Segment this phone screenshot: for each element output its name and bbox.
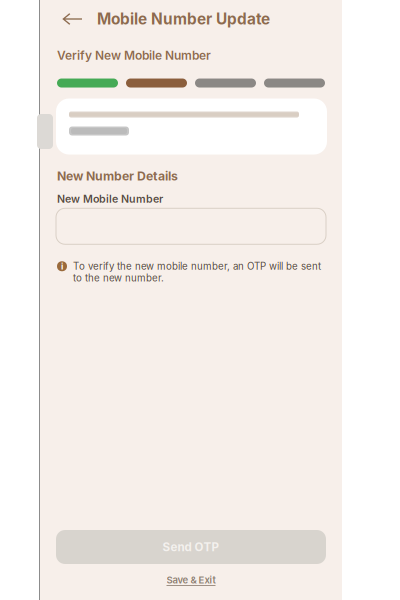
button[interactable]: Back — Mobile Number Update <box>40 0 342 38</box>
button[interactable]: New Mobile Number field <box>56 208 326 244</box>
staticText: New Number Details <box>57 168 178 183</box>
staticText: New Mobile Number <box>57 192 163 205</box>
staticText: Mobile Number Update <box>97 10 270 28</box>
staticText: i <box>61 261 63 271</box>
staticText: To verify the new mobile number, an OTP … <box>73 260 321 284</box>
button[interactable]: Send OTP <box>56 530 326 564</box>
staticText: Verify New Mobile Number <box>57 48 211 62</box>
staticText: Send OTP <box>162 540 219 554</box>
button[interactable]: Save & Exit <box>56 569 326 591</box>
staticText: Save & Exit <box>166 574 215 586</box>
